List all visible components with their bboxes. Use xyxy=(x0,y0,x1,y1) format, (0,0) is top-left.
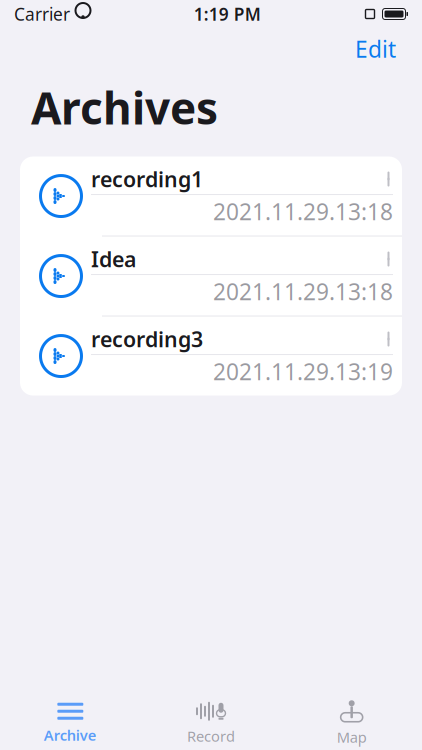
staticText: Map xyxy=(337,727,367,747)
staticText: Idea xyxy=(91,245,136,273)
staticText: 2021.11.29.13:19 xyxy=(213,356,393,387)
staticText: 1:19 PM xyxy=(194,2,261,25)
staticText: Archives xyxy=(31,78,218,136)
staticText: 2021.11.29.13:18 xyxy=(213,196,393,227)
button[interactable]: recording1 xyxy=(20,156,402,236)
staticText: recording3 xyxy=(91,325,203,353)
staticText: recording1 xyxy=(91,165,203,193)
staticText: Carrier xyxy=(14,2,70,25)
button[interactable]: Map xyxy=(281,697,422,749)
button[interactable]: Archive xyxy=(0,697,141,749)
staticText: Record xyxy=(187,726,235,746)
staticText: Archive xyxy=(44,725,97,745)
staticText: Edit xyxy=(355,34,396,64)
button[interactable]: Idea xyxy=(20,236,402,316)
button[interactable]: Edit xyxy=(343,29,408,69)
button[interactable]: Record xyxy=(141,697,281,749)
staticText: 2021.11.29.13:18 xyxy=(213,276,393,307)
button[interactable]: recording3 xyxy=(20,316,402,395)
